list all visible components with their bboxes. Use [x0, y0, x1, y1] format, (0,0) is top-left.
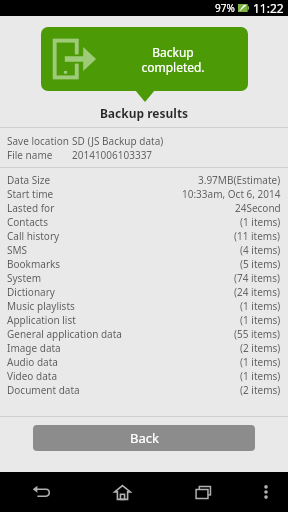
staticText: Start time [7, 187, 54, 201]
staticText: Video data [7, 369, 57, 383]
staticText: 3.97MB(Estimate) [198, 173, 281, 187]
staticText: Image data [7, 341, 61, 355]
staticText: (1 items) [240, 215, 281, 229]
staticText: (74 items) [234, 271, 281, 285]
staticText: (2 items) [240, 341, 281, 355]
staticText: 10:33am, Oct 6, 2014 [182, 187, 281, 201]
staticText: (1 items) [240, 369, 281, 383]
staticText: Data Size [7, 173, 51, 187]
button[interactable]: Home [82, 472, 163, 512]
staticText: Backup completed. [141, 44, 205, 75]
staticText: Document data [7, 383, 80, 397]
button[interactable]: Back [33, 425, 255, 451]
staticText: 11:22 [253, 0, 284, 16]
staticText: File name [7, 148, 53, 162]
staticText: (55 items) [234, 327, 281, 341]
staticText: Backup results [0, 105, 288, 121]
staticText: (1 items) [240, 299, 281, 313]
staticText: Dictionary [7, 285, 55, 299]
button[interactable]: More options [244, 472, 288, 512]
staticText: (4 items) [240, 243, 281, 257]
staticText: SD (JS Backup data) [72, 134, 164, 148]
staticText: Call history [7, 229, 60, 243]
staticText: Application list [7, 313, 76, 327]
staticText: (11 items) [234, 229, 281, 243]
staticText: Lasted for [7, 201, 55, 215]
staticText: System [7, 271, 41, 285]
staticText: (1 items) [240, 313, 281, 327]
staticText: Bookmarks [7, 257, 61, 271]
staticText: (24 items) [234, 285, 281, 299]
staticText: 20141006103337 [72, 148, 153, 162]
staticText: Save location [7, 134, 69, 148]
staticText: Music playlists [7, 299, 75, 313]
button[interactable]: Back [0, 472, 82, 512]
staticText: 97% [215, 1, 235, 15]
staticText: (1 items) [240, 355, 281, 369]
button[interactable]: Recent apps [163, 472, 244, 512]
staticText: (2 items) [240, 383, 281, 397]
staticText: (5 items) [240, 257, 281, 271]
staticText: Audio data [7, 355, 58, 369]
staticText: 24Second [235, 201, 281, 215]
staticText: Back [130, 429, 159, 447]
staticText: General application data [7, 327, 122, 341]
staticText: SMS [7, 243, 28, 257]
staticText: Contacts [7, 215, 48, 229]
